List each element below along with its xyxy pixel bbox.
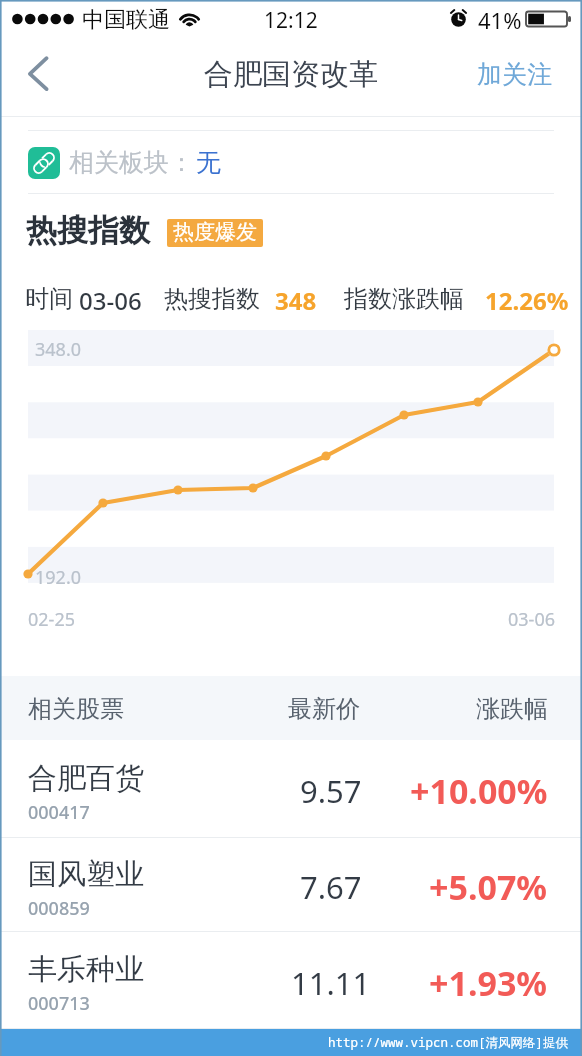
staticText: 03-06 — [79, 284, 142, 317]
staticText: 无 — [196, 147, 221, 178]
staticText: http://www.vipcn.com[清风网络]提供 — [328, 1034, 569, 1051]
staticText: 国风塑业 — [28, 856, 144, 893]
staticText: 中国联通 — [82, 6, 170, 34]
staticText: 热搜指数 — [26, 211, 150, 250]
staticText: 9.57 — [300, 770, 362, 812]
staticText: 相关板块： — [69, 147, 194, 178]
staticText: +5.07% — [429, 864, 548, 910]
button[interactable]: 丰乐种业 — [0, 932, 582, 1029]
staticText: 192.0 — [35, 565, 82, 590]
button[interactable]: 国风塑业 — [0, 838, 582, 932]
staticText: 加关注 — [477, 59, 552, 90]
staticText: 03-06 — [508, 607, 555, 632]
staticText: 涨跌幅 — [476, 694, 548, 724]
staticText: +1.93% — [429, 960, 548, 1006]
staticText: 000417 — [28, 800, 90, 825]
staticText: 热度爆发 — [173, 219, 257, 245]
staticText: 11.11 — [291, 962, 371, 1004]
button[interactable]: 返回 — [0, 40, 76, 117]
staticText: 348 — [275, 284, 317, 317]
staticText: 348.0 — [35, 337, 82, 362]
staticText: 12.26% — [485, 284, 569, 317]
staticText: 7.67 — [300, 866, 362, 908]
staticText: 丰乐种业 — [28, 951, 144, 988]
staticText: 热搜指数 — [164, 284, 260, 314]
button[interactable]: 合肥百货 — [0, 740, 582, 838]
staticText: 02-25 — [28, 607, 75, 632]
staticText: 41% — [478, 5, 522, 35]
button[interactable]: 加关注 — [477, 40, 582, 117]
staticText: 12:12 — [264, 6, 318, 35]
staticText: 000859 — [28, 896, 90, 921]
staticText: 最新价 — [288, 694, 360, 724]
staticText: 相关股票 — [28, 694, 124, 724]
staticText: 合肥百货 — [28, 760, 144, 797]
staticText: 时间 — [25, 284, 73, 314]
staticText: 合肥国资改革 — [204, 56, 378, 93]
staticText: 指数涨跌幅 — [344, 284, 464, 314]
staticText: 000713 — [28, 991, 90, 1016]
staticText: +10.00% — [410, 768, 548, 814]
